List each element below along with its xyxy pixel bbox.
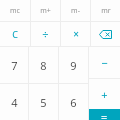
button[interactable]: C xyxy=(0,22,30,46)
staticText: 7 xyxy=(11,58,18,73)
button[interactable]: × xyxy=(61,22,90,46)
staticText: × xyxy=(73,27,79,41)
staticText: 8 xyxy=(40,58,47,73)
staticText: mr xyxy=(101,6,111,16)
staticText: m+ xyxy=(40,6,51,16)
staticText: ÷ xyxy=(42,27,49,42)
button[interactable]: ÷ xyxy=(31,22,60,46)
staticText: 4 xyxy=(11,95,18,110)
staticText: − xyxy=(101,55,108,70)
button[interactable]: 4 xyxy=(0,84,28,120)
button[interactable]: 7 xyxy=(0,47,28,83)
staticText: 5 xyxy=(40,95,47,110)
button[interactable]: 5 xyxy=(29,84,58,120)
button[interactable]: 9 xyxy=(59,47,88,83)
button[interactable]: 8 xyxy=(29,47,58,83)
button[interactable]: m+ xyxy=(31,0,60,21)
staticText: = xyxy=(101,109,108,120)
button[interactable]: mc xyxy=(0,0,30,21)
staticText: + xyxy=(101,87,108,102)
staticText: 6 xyxy=(70,95,77,110)
staticText: C xyxy=(12,28,18,40)
staticText: mc xyxy=(10,6,20,16)
staticText: m- xyxy=(71,6,80,16)
staticText: 9 xyxy=(70,58,77,73)
button[interactable]: m- xyxy=(61,0,90,21)
button[interactable]: + xyxy=(89,79,120,109)
button[interactable]: = xyxy=(89,109,120,120)
button[interactable]: Backspace xyxy=(91,22,120,46)
button[interactable]: − xyxy=(89,47,120,78)
button[interactable]: 6 xyxy=(59,84,88,120)
button[interactable]: mr xyxy=(91,0,120,21)
